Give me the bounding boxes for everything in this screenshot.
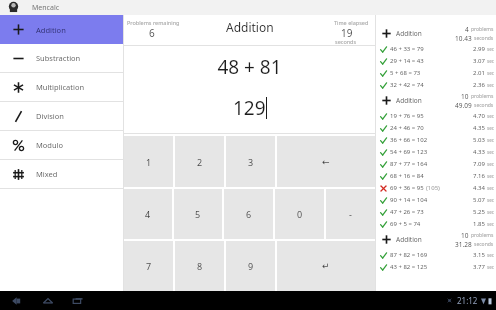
button[interactable]: 87 + 77 = 164 xyxy=(376,158,496,170)
button[interactable]: Modulo xyxy=(0,131,123,159)
staticText: 48 + 81 xyxy=(217,54,282,80)
button[interactable]: Addition xyxy=(0,15,123,44)
button[interactable]: 5 xyxy=(174,189,222,239)
button[interactable]: 5 + 68 = 73 xyxy=(376,67,496,79)
staticText: 9 xyxy=(248,260,254,272)
staticText: Addition xyxy=(396,29,422,38)
button[interactable]: ↵ xyxy=(277,241,375,291)
button[interactable]: Mixed xyxy=(0,160,123,188)
staticText: 1.85 xyxy=(473,220,485,228)
button[interactable]: 69 + 5 = 74 xyxy=(376,218,496,230)
staticText: 19 xyxy=(341,26,353,40)
staticText: 46 + 33 = 79 xyxy=(390,45,424,53)
button[interactable]: 0 xyxy=(275,189,324,239)
staticText: 10 xyxy=(461,92,469,101)
staticText: 6 xyxy=(149,26,155,40)
staticText: - xyxy=(349,208,352,220)
staticText: sec xyxy=(487,161,494,167)
staticText: Modulo xyxy=(36,140,64,150)
staticText: sec xyxy=(487,58,494,64)
staticText: 4 xyxy=(145,208,151,220)
staticText: 7.16 xyxy=(473,172,485,180)
staticText: 7.09 xyxy=(473,160,485,168)
staticText: Mencalc xyxy=(32,3,60,13)
staticText: sec xyxy=(487,46,494,52)
staticText: (105) xyxy=(426,184,440,192)
staticText: 3.15 xyxy=(473,251,485,259)
staticText: sec xyxy=(487,149,494,155)
button[interactable]: 36 + 66 = 102 xyxy=(376,134,496,146)
staticText: sec xyxy=(487,125,494,131)
staticText: problems xyxy=(471,93,494,100)
staticText: sec xyxy=(487,82,494,88)
button[interactable]: 3 xyxy=(226,136,275,187)
button[interactable]: Division xyxy=(0,102,123,130)
staticText: sec xyxy=(487,252,494,258)
staticText: 8 xyxy=(197,260,203,272)
button[interactable]: 87 + 82 = 169 xyxy=(376,249,496,261)
button[interactable]: Recent apps xyxy=(67,291,89,310)
staticText: 4.35 xyxy=(473,124,485,132)
staticText: 10 xyxy=(461,231,469,240)
button[interactable]: Multiplication xyxy=(0,73,123,101)
staticText: 47 + 26 = 73 xyxy=(390,208,424,216)
button[interactable]: 32 + 42 = 74 xyxy=(376,79,496,91)
button[interactable]: Addition xyxy=(376,24,496,43)
staticText: 5.25 xyxy=(473,208,485,216)
button[interactable]: 7 xyxy=(124,241,173,291)
button[interactable]: 90 + 14 = 104 xyxy=(376,194,496,206)
staticText: sec xyxy=(487,70,494,76)
staticText: 69 + 5 = 74 xyxy=(390,220,421,228)
button[interactable]: 24 + 46 = 70 xyxy=(376,122,496,134)
staticText: 5.03 xyxy=(473,136,485,144)
staticText: Problems remaining xyxy=(127,19,180,26)
button[interactable]: 9 xyxy=(226,241,275,291)
button[interactable]: 4 xyxy=(124,189,172,239)
staticText: Addition xyxy=(396,235,422,244)
button[interactable]: Home xyxy=(37,291,59,310)
button[interactable]: 47 + 26 = 73 xyxy=(376,206,496,218)
staticText: 36 + 66 = 102 xyxy=(390,136,428,144)
staticText: 5.07 xyxy=(473,196,485,204)
button[interactable]: 1 xyxy=(124,136,173,187)
button[interactable]: 8 xyxy=(175,241,224,291)
staticText: 3.07 xyxy=(473,57,485,65)
button[interactable]: 43 + 82 = 125 xyxy=(376,261,496,273)
button[interactable]: Addition xyxy=(376,91,496,110)
staticText: 54 + 69 = 123 xyxy=(390,148,428,156)
staticText: ↵ xyxy=(322,261,330,271)
staticText: Addition xyxy=(36,25,66,35)
staticText: 21:12 xyxy=(457,295,478,306)
button[interactable]: 2 xyxy=(175,136,224,187)
staticText: 4.34 xyxy=(473,184,485,192)
staticText: problems xyxy=(471,26,494,33)
button[interactable]: 68 + 16 = 84 xyxy=(376,170,496,182)
staticText: 129 xyxy=(233,95,266,121)
button[interactable]: 69 + 36 = 95 xyxy=(376,182,496,194)
button[interactable]: 46 + 33 = 79 xyxy=(376,43,496,55)
button[interactable]: 6 xyxy=(224,189,273,239)
staticText: Division xyxy=(36,111,64,121)
button[interactable]: Addition xyxy=(376,230,496,249)
button[interactable]: 29 + 14 = 43 xyxy=(376,55,496,67)
staticText: 90 + 14 = 104 xyxy=(390,196,428,204)
staticText: 29 + 14 = 43 xyxy=(390,57,424,65)
staticText: sec xyxy=(487,209,494,215)
button[interactable]: Back xyxy=(5,291,27,310)
staticText: seconds xyxy=(335,38,357,45)
staticText: sec xyxy=(487,113,494,119)
button[interactable]: ← xyxy=(277,136,375,187)
staticText: sec xyxy=(487,137,494,143)
button[interactable]: 19 + 76 = 95 xyxy=(376,110,496,122)
staticText: Multiplication xyxy=(36,82,85,92)
staticText: 19 + 76 = 95 xyxy=(390,112,424,120)
staticText: Substraction xyxy=(36,53,81,63)
staticText: 4.70 xyxy=(473,112,485,120)
staticText: Time elapsed xyxy=(334,19,369,26)
button[interactable]: Substraction xyxy=(0,44,123,72)
staticText: Mixed xyxy=(36,169,58,179)
staticText: 68 + 16 = 84 xyxy=(390,172,424,180)
staticText: 2.99 xyxy=(473,45,485,53)
button[interactable]: 54 + 69 = 123 xyxy=(376,146,496,158)
